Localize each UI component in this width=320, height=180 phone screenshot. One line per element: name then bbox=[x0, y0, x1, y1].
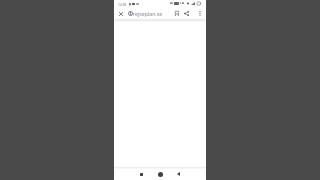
button[interactable]: Share bbox=[181, 8, 192, 19]
staticText: 12:05 bbox=[118, 2, 127, 6]
button[interactable]: Close bbox=[115, 8, 126, 19]
staticText: rejseplan.se bbox=[133, 10, 163, 17]
button[interactable]: Home bbox=[154, 168, 166, 180]
button[interactable]: rejseplan.se bbox=[133, 7, 176, 20]
button[interactable]: Site information bbox=[125, 8, 136, 19]
button[interactable]: Back bbox=[172, 168, 184, 180]
button[interactable]: Bookmark bbox=[171, 8, 182, 19]
button[interactable]: Recent apps bbox=[135, 168, 147, 180]
button[interactable]: More options bbox=[194, 8, 205, 19]
